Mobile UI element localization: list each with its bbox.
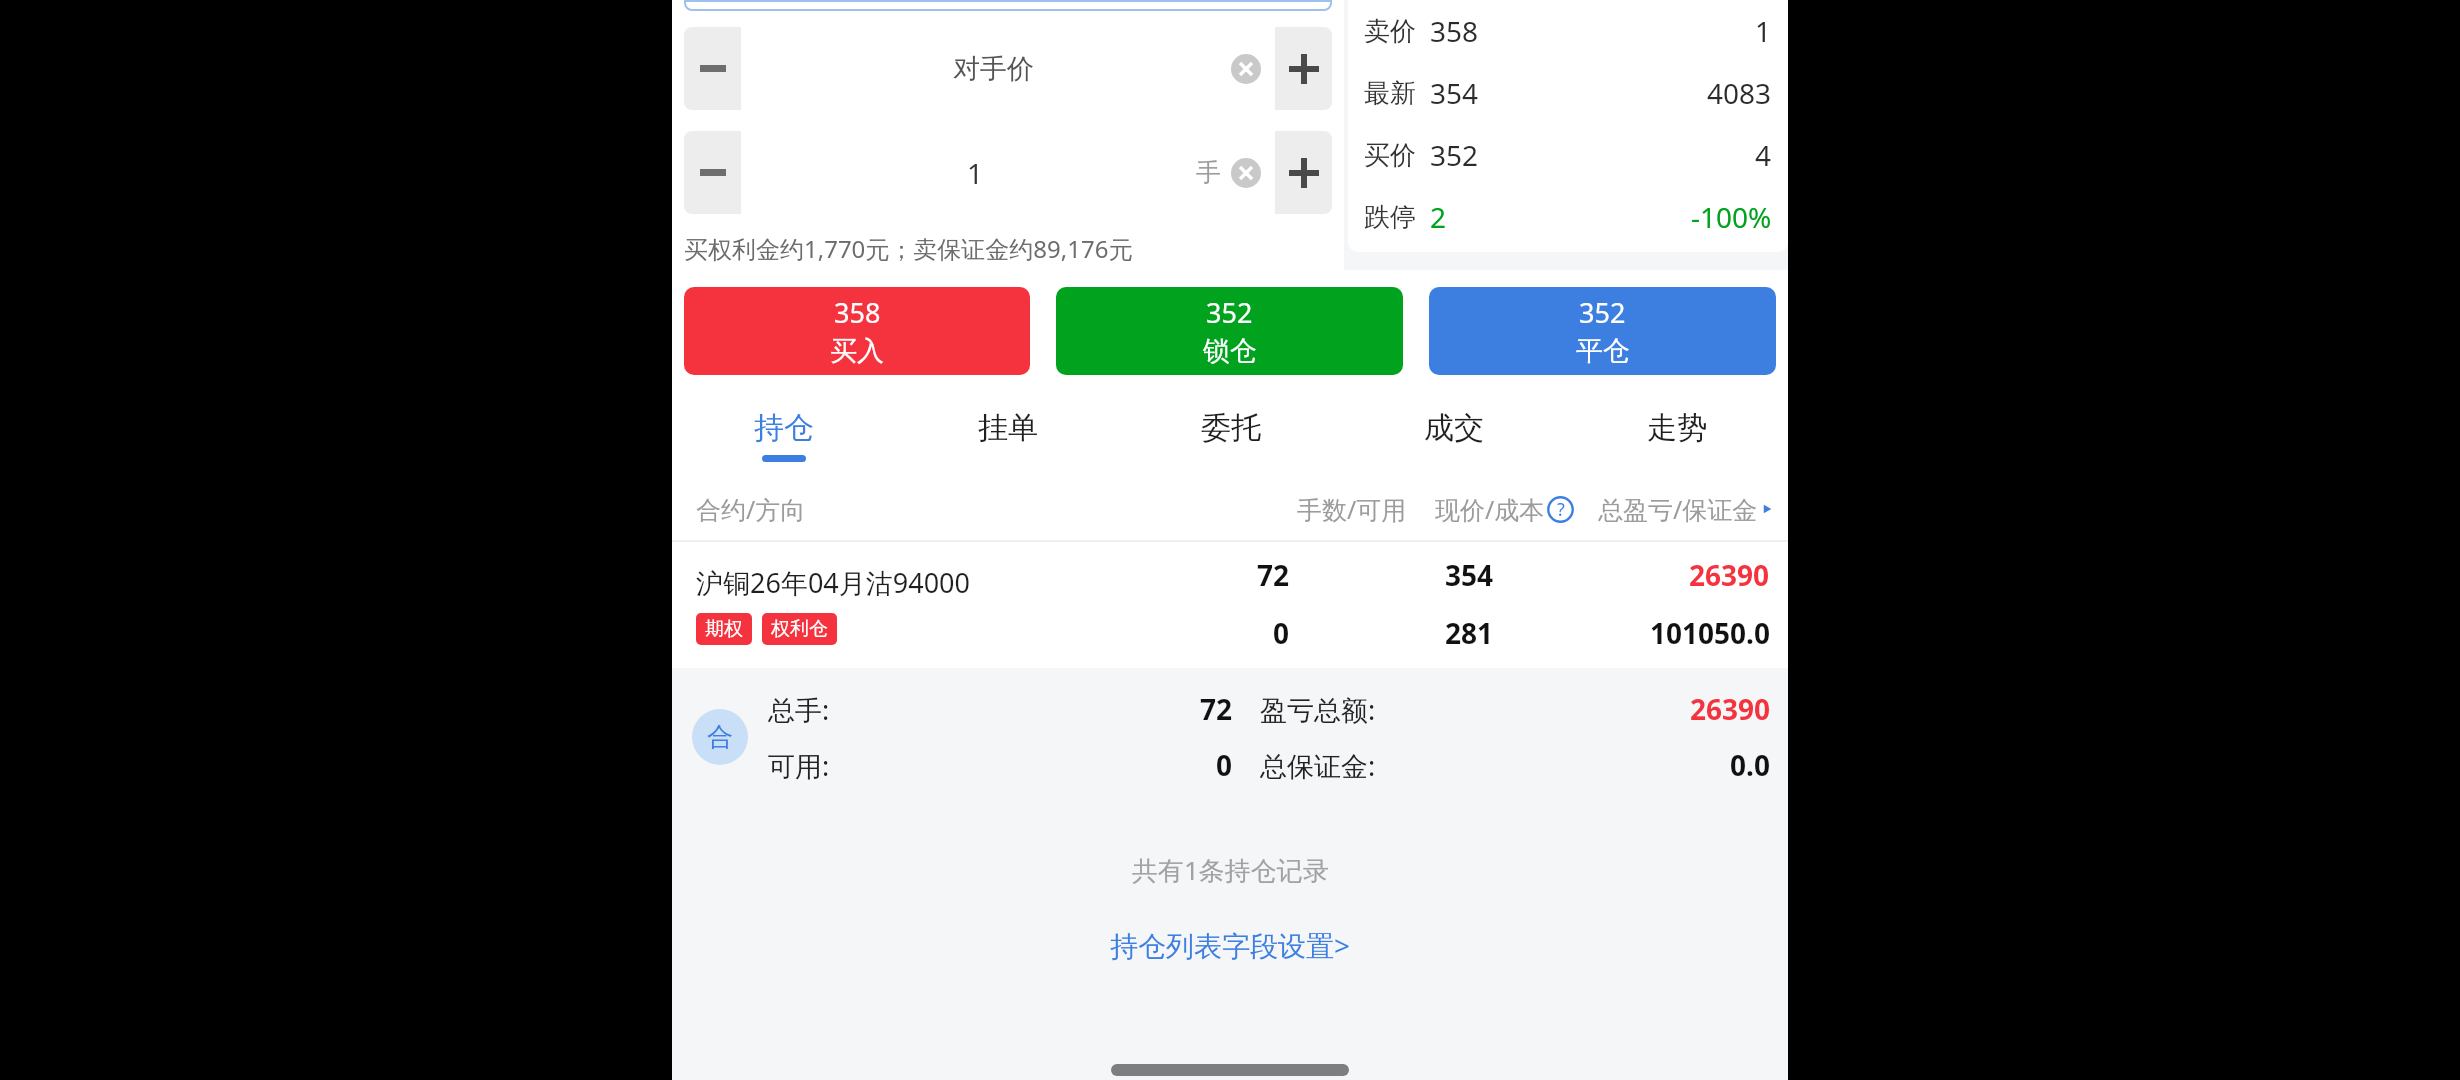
staticText: 358 <box>1430 12 1479 50</box>
staticText: 26390 <box>1689 556 1770 594</box>
staticText: 352 <box>1206 294 1253 331</box>
staticText: 最新 <box>1364 77 1416 110</box>
staticText: 手 <box>1196 157 1221 188</box>
staticText: 4083 <box>1707 74 1772 112</box>
staticText: 走势 <box>1647 409 1707 447</box>
button[interactable]: 成交 <box>1342 392 1565 478</box>
staticText: 现价/成本 <box>1435 492 1545 526</box>
staticText: 总保证金: <box>1260 747 1376 784</box>
staticText: 盈亏总额: <box>1260 691 1376 728</box>
staticText: 1 <box>967 154 984 192</box>
staticText: 买入 <box>830 334 884 368</box>
button[interactable]: 挂单 <box>896 392 1119 478</box>
staticText: 共有1条持仓记录 <box>1132 852 1329 888</box>
staticText: 354 <box>1445 556 1494 594</box>
button[interactable]: 持仓列表字段设置> <box>1110 926 1351 964</box>
staticText: 总盈亏/保证金 <box>1598 492 1758 526</box>
button[interactable]: Decrease <box>684 27 741 110</box>
staticText: 4 <box>1755 136 1772 174</box>
button[interactable]: 持仓 <box>672 392 896 478</box>
staticText: 卖价 <box>1364 15 1416 48</box>
staticText: 281 <box>1445 614 1494 652</box>
staticText: 1 <box>1755 12 1772 50</box>
staticText: 平仓 <box>1576 334 1630 368</box>
staticText: 101050.0 <box>1650 614 1770 652</box>
button[interactable]: 总盈亏/保证金 <box>1598 492 1776 526</box>
staticText: 合 <box>707 721 733 754</box>
staticText: 0 <box>1273 614 1290 652</box>
staticText: 2 <box>1430 198 1447 236</box>
staticText: 可用: <box>768 747 830 784</box>
button[interactable]: Decrease <box>684 131 741 214</box>
staticText: 委托 <box>1201 409 1261 447</box>
button[interactable]: 走势 <box>1565 392 1788 478</box>
staticText: 成交 <box>1424 409 1484 447</box>
staticText: 期权 <box>705 617 743 641</box>
staticText: 354 <box>1430 74 1479 112</box>
staticText: 358 <box>834 294 881 331</box>
staticText: 对手价 <box>953 52 1034 86</box>
button[interactable]: Increase <box>1275 27 1332 110</box>
button[interactable]: 委托 <box>1119 392 1342 478</box>
staticText: -100% <box>1691 198 1772 236</box>
staticText: ? <box>1557 497 1565 522</box>
button[interactable]: 352 <box>1429 287 1776 375</box>
staticText: 352 <box>1430 136 1479 174</box>
staticText: 沪铜26年04月沽94000 <box>696 564 970 601</box>
staticText: 手数/可用 <box>1297 492 1407 526</box>
button[interactable]: Increase <box>1275 131 1332 214</box>
staticText: 跌停 <box>1364 201 1416 234</box>
staticText: 挂单 <box>978 409 1038 447</box>
staticText: 锁仓 <box>1203 334 1257 368</box>
staticText: 买价 <box>1364 139 1416 172</box>
staticText: 持仓列表字段设置> <box>1110 926 1351 964</box>
button[interactable]: 358 <box>684 287 1030 375</box>
staticText: 0.0 <box>1376 746 1770 784</box>
staticText: 总手: <box>768 691 830 728</box>
staticText: 72 <box>1257 556 1290 594</box>
button[interactable]: 352 <box>1056 287 1403 375</box>
staticText: 26390 <box>1376 690 1770 728</box>
staticText: 合约/方向 <box>696 492 806 526</box>
staticText: 买权利金约1,770元；卖保证金约89,176元 <box>684 232 1133 265</box>
staticText: 权利仓 <box>771 617 828 641</box>
button[interactable] <box>684 0 1332 11</box>
staticText: 持仓 <box>754 409 814 447</box>
staticText: 352 <box>1579 294 1626 331</box>
staticText: 72 <box>830 690 1232 728</box>
staticText: 0 <box>830 746 1232 784</box>
button[interactable]: 沪铜26年04月沽94000 <box>696 556 1770 652</box>
